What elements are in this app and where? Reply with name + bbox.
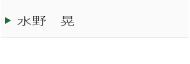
button[interactable]: 水野 bbox=[1, 0, 189, 37]
staticText: 晃 bbox=[60, 14, 75, 28]
staticText: 水野 bbox=[17, 14, 47, 28]
